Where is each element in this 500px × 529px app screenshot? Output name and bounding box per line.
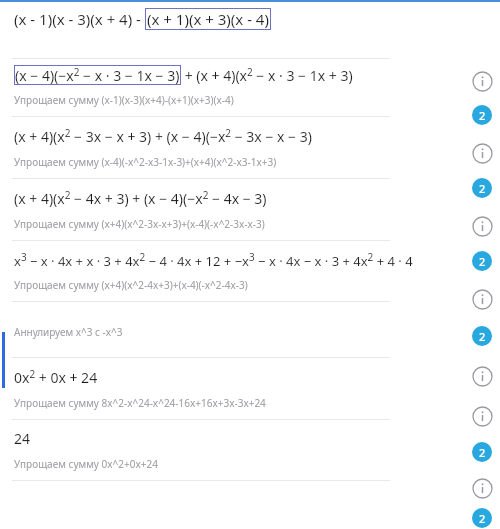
button[interactable]: Info: [465, 282, 499, 316]
staticText: 2: [479, 108, 486, 123]
button[interactable]: (x − 4)(−x2 − x · 3 − 1x − 3): [15, 65, 180, 85]
button[interactable]: Two steps: [465, 435, 499, 469]
button[interactable]: 24: [0, 429, 500, 490]
staticText: 2: [479, 181, 486, 196]
staticText: Аннулируем x^3 с -x^3: [14, 325, 123, 339]
button[interactable]: Info: [465, 209, 499, 243]
staticText: 2: [479, 511, 486, 526]
button[interactable]: (x + 4)(x2 − 3x − x + 3) + (x − 4)(−x2 −…: [0, 126, 500, 188]
button[interactable]: Two steps: [465, 319, 499, 353]
button[interactable]: Info: [465, 359, 499, 393]
button[interactable]: Two steps: [465, 244, 499, 278]
staticText: 2: [479, 254, 486, 269]
button[interactable]: Info: [465, 399, 499, 433]
staticText: (x - 1)(x - 3)(x + 4) -: [14, 9, 145, 29]
button[interactable]: Info: [465, 136, 499, 170]
staticText: (x + 1)(x + 3)(x - 4): [147, 9, 269, 29]
staticText: (x − 4)(−x2 − x · 3 − 1x − 3): [15, 65, 180, 85]
staticText: (x + 4)(x2 − 3x − x + 3) + (x − 4)(−x2 −…: [14, 126, 312, 146]
staticText: 0x2 + 0x + 24: [14, 367, 98, 387]
staticText: Упрощаем сумму (x+4)(x^2-3x-x+3)+(x-4)(-…: [14, 217, 265, 231]
staticText: 2: [479, 445, 486, 460]
button[interactable]: Two steps: [465, 507, 499, 529]
staticText: x3 − x · 4x + x · 3 + 4x2 − 4 · 4x + 12 …: [14, 250, 413, 269]
button[interactable]: (x + 4)(x2 − 4x + 3) + (x − 4)(−x2 − 4x …: [0, 188, 500, 250]
staticText: Упрощаем сумму (x-1)(x-3)(x+4)-(x+1)(x+3…: [14, 93, 234, 107]
button[interactable]: Two steps: [465, 98, 499, 132]
button[interactable]: Аннулируем x^3 с -x^3: [0, 311, 500, 367]
staticText: 2: [479, 329, 486, 344]
button[interactable]: (x + 1)(x + 3)(x - 4): [147, 9, 269, 29]
staticText: Упрощаем сумму (x+4)(x^2-4x+3)+(x-4)(-x^…: [14, 278, 248, 292]
staticText: + (x + 4)(x2 − x · 3 − 1x + 3): [181, 65, 353, 85]
button[interactable]: 0x2 + 0x + 24: [0, 367, 500, 429]
staticText: 24: [14, 429, 31, 448]
button[interactable]: Info: [465, 471, 499, 505]
button[interactable]: x3 − x · 4x + x · 3 + 4x2 − 4 · 4x + 12 …: [0, 250, 500, 311]
staticText: (x + 4)(x2 − 4x + 3) + (x − 4)(−x2 − 4x …: [14, 188, 267, 208]
staticText: Упрощаем сумму 8x^2-x^24-x^24-16x+16x+3x…: [14, 396, 266, 410]
button[interactable]: Two steps: [465, 171, 499, 205]
staticText: Упрощаем сумму (x-4)(-x^2-x3-1x-3)+(x+4)…: [14, 155, 277, 169]
button[interactable]: Info: [465, 64, 499, 98]
staticText: Упрощаем сумму 0x^2+0x+24: [14, 457, 158, 471]
